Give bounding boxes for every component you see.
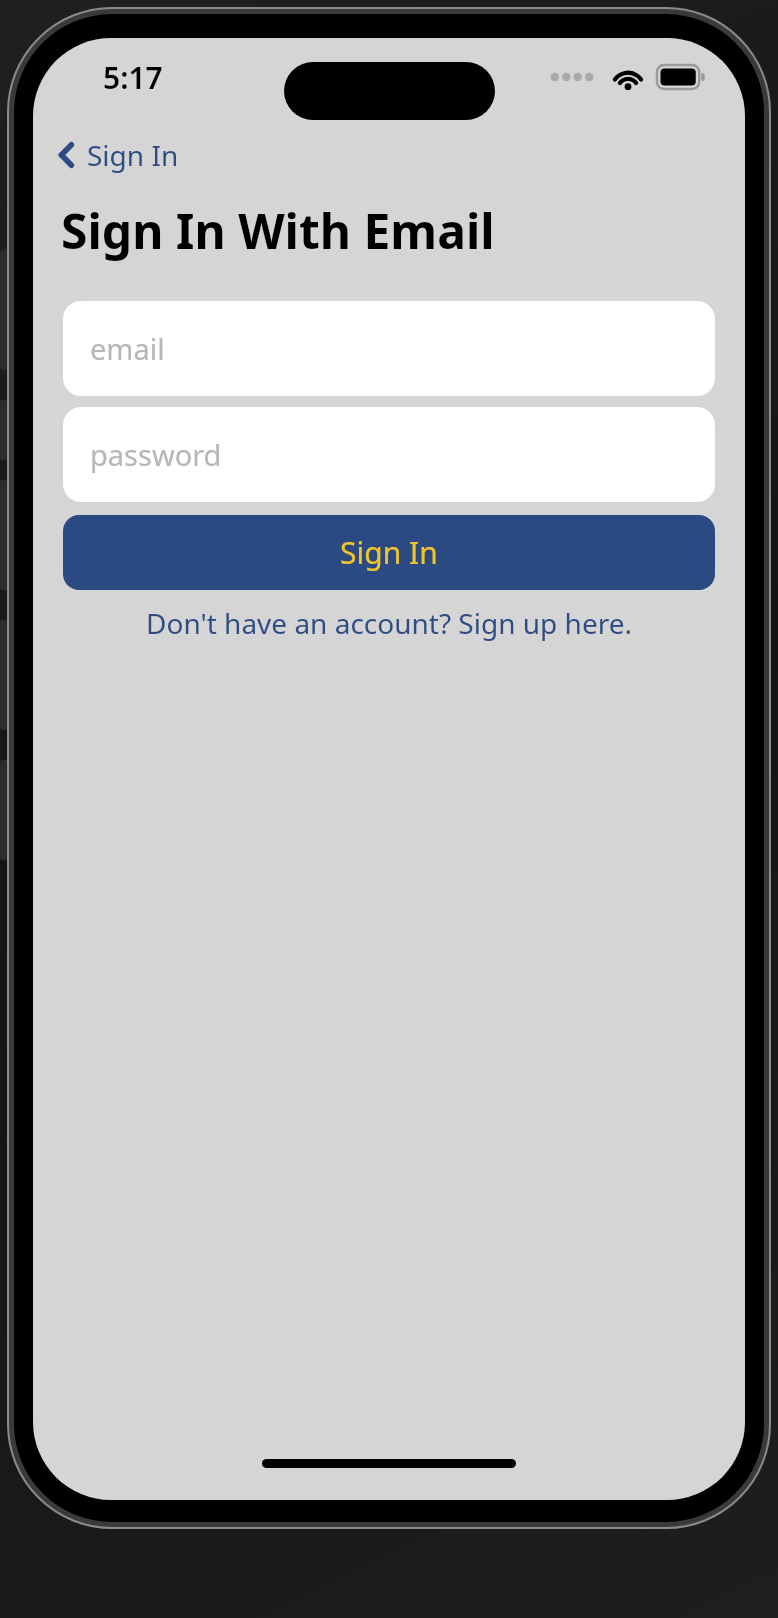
button[interactable]: Don't have an account? Sign up here. [33,596,745,650]
staticText: Don't have an account? Sign up here. [146,604,632,642]
staticText: Sign In [340,532,438,573]
button[interactable]: password [63,407,715,502]
button[interactable]: Sign In [63,515,715,590]
staticText: 5:17 [103,57,163,98]
staticText: Sign In [87,136,179,174]
button[interactable]: Sign In [51,130,185,180]
staticText: Sign In With Email [61,198,495,263]
staticText: email [90,329,165,368]
button[interactable]: email [63,301,715,396]
staticText: password [90,435,222,474]
